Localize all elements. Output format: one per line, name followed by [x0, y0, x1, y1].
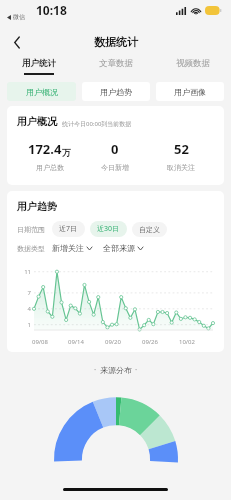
staticText: 统计今日00:00到当前数据 [62, 120, 132, 128]
button[interactable]: 文章数据 [77, 55, 154, 78]
staticText: 52 [174, 140, 189, 158]
staticText: 文章数据 [99, 58, 133, 69]
staticText: · [135, 364, 138, 375]
button[interactable]: 自定义 [132, 222, 167, 237]
staticText: 09/08 [32, 338, 48, 346]
staticText: 1 [17, 321, 31, 329]
staticText: 09/14 [68, 338, 84, 346]
staticText: 7 [17, 289, 31, 297]
staticText: 近30日 [97, 224, 120, 234]
button[interactable]: 用户统计 [0, 55, 77, 78]
button[interactable]: 近30日 [90, 221, 127, 237]
staticText: 用户画像 [174, 87, 206, 97]
staticText: 用户趋势 [17, 200, 57, 213]
staticText: 用户概况 [26, 87, 58, 97]
button[interactable]: 近7日 [52, 221, 85, 237]
button[interactable]: 新增关注 [52, 243, 92, 253]
staticText: 自定义 [139, 225, 160, 234]
button[interactable]: 视频数据 [154, 55, 231, 78]
staticText: 今日新增 [101, 163, 129, 172]
staticText: 10/02 [179, 338, 195, 346]
staticText: 172.4 [28, 140, 62, 158]
staticText: 日期范围 [17, 225, 45, 234]
staticText: 新增关注 [52, 243, 84, 253]
button[interactable]: 用户画像 [156, 82, 224, 101]
staticText: 数据类型 [17, 244, 45, 253]
button[interactable]: 全部来源 [103, 243, 143, 253]
staticText: 微信 [13, 13, 25, 21]
staticText: 用户趋势 [100, 87, 132, 97]
staticText: 09/20 [105, 338, 121, 346]
staticText: 万 [62, 147, 71, 158]
staticText: 11 [17, 268, 31, 276]
staticText: 数据统计 [94, 35, 138, 49]
staticText: 取消关注 [167, 163, 195, 172]
staticText: 10:18 [36, 2, 67, 18]
staticText: 0 [111, 140, 119, 158]
staticText: 用户总数 [36, 163, 64, 172]
staticText: 用户概况 [17, 115, 57, 128]
staticText: 全部来源 [103, 243, 135, 253]
staticText: 用户统计 [22, 58, 56, 69]
staticText: 视频数据 [176, 58, 210, 69]
staticText: 近7日 [59, 224, 78, 234]
staticText: 4 [17, 305, 31, 313]
button[interactable]: Back [5, 30, 29, 54]
staticText: · [94, 364, 97, 375]
button[interactable]: 用户概况 [7, 82, 76, 101]
button[interactable]: 用户趋势 [82, 82, 150, 101]
staticText: 来源分布 [100, 365, 132, 375]
staticText: 09/26 [142, 338, 158, 346]
